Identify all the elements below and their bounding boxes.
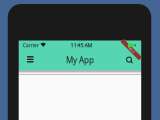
button[interactable]: Search <box>122 50 138 70</box>
staticText: My App <box>66 55 94 65</box>
button[interactable]: Menu <box>22 49 38 69</box>
staticText: DEMO <box>127 48 135 51</box>
staticText: 11:45 AM <box>70 42 92 49</box>
staticText: Carrier <box>23 42 39 49</box>
